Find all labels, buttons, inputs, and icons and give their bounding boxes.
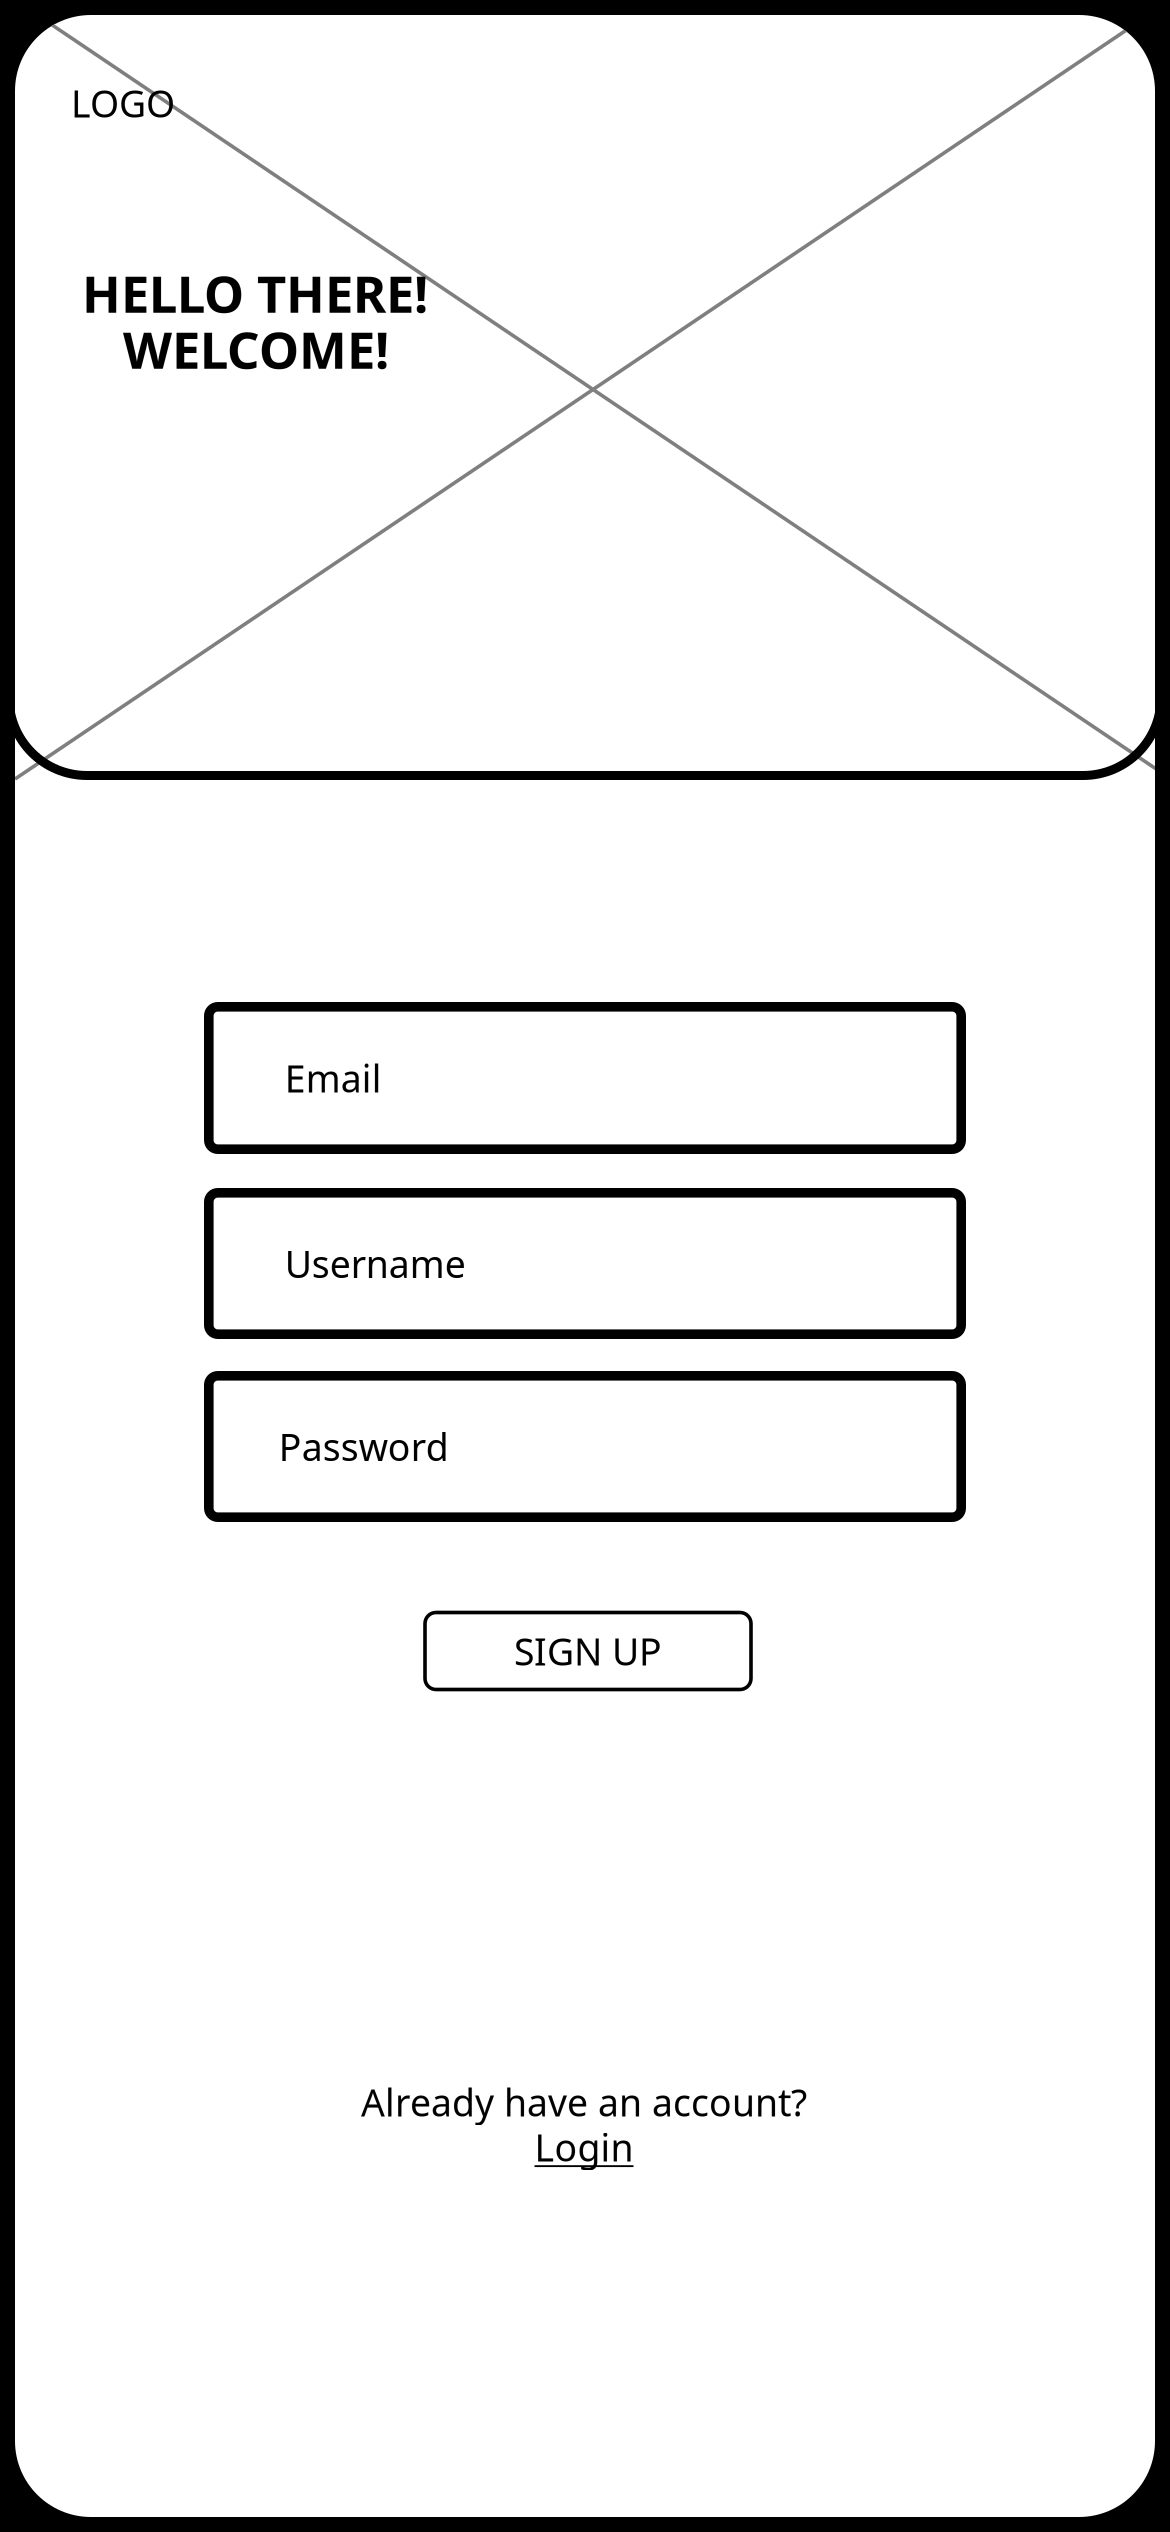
staticText: LOGO — [71, 78, 175, 128]
staticText: WELCOME! — [123, 315, 389, 383]
staticText: SIGN UP — [514, 1626, 662, 1676]
button[interactable]: Email — [204, 1002, 966, 1154]
staticText: Login — [534, 2122, 633, 2172]
staticText: Already have an account? — [361, 2077, 807, 2127]
staticText: HELLO THERE! — [82, 259, 428, 327]
button[interactable]: Username — [204, 1188, 966, 1339]
staticText: Email — [285, 1053, 382, 1103]
button[interactable]: SIGN UP — [423, 1610, 753, 1691]
button[interactable]: Login — [534, 2122, 633, 2172]
button[interactable]: Password — [204, 1371, 966, 1522]
staticText: Password — [279, 1422, 449, 1471]
staticText: Username — [285, 1239, 466, 1288]
